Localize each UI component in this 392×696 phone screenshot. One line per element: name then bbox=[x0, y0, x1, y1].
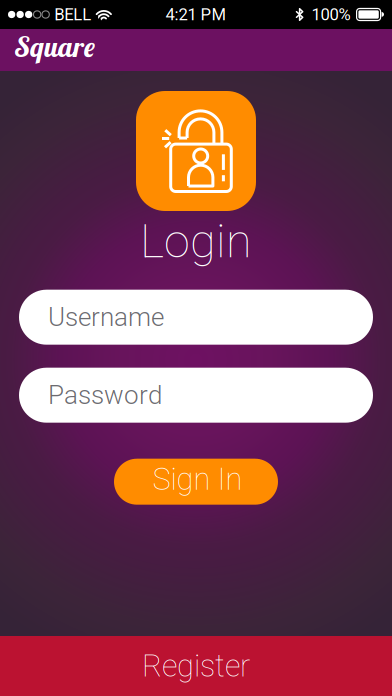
button[interactable]: Sign In bbox=[114, 459, 278, 505]
staticText: BELL bbox=[54, 5, 91, 24]
staticText: Square bbox=[15, 29, 95, 64]
button[interactable]: Password bbox=[19, 368, 373, 423]
button[interactable]: Username bbox=[19, 290, 373, 345]
staticText: 100% bbox=[312, 5, 351, 24]
staticText: Password bbox=[48, 380, 162, 410]
staticText: Sign In bbox=[152, 461, 242, 497]
button[interactable]: Register bbox=[0, 636, 392, 696]
staticText: Username bbox=[48, 302, 164, 332]
staticText: Register bbox=[142, 648, 250, 684]
staticText: Login bbox=[140, 214, 252, 269]
staticText: 4:21 PM bbox=[165, 5, 226, 24]
